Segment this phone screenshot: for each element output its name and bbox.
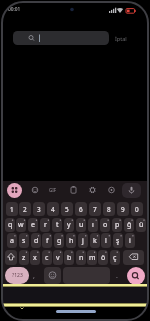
staticText: s xyxy=(22,236,26,246)
staticText: g xyxy=(57,236,62,246)
staticText: e xyxy=(31,220,35,230)
button[interactable]: İptal xyxy=(115,35,127,42)
staticText: ğ xyxy=(127,220,132,230)
button[interactable]: ç xyxy=(110,250,120,265)
button[interactable]: u xyxy=(76,218,86,232)
button[interactable]: ?123 xyxy=(5,267,29,284)
button[interactable]: 2 xyxy=(19,202,31,216)
button[interactable] xyxy=(122,183,141,198)
staticText: 9 xyxy=(121,205,125,214)
staticText: q xyxy=(8,220,13,230)
button[interactable]: j xyxy=(78,233,88,248)
button[interactable]: w xyxy=(16,218,26,232)
staticText: f xyxy=(46,236,49,246)
staticText: y xyxy=(67,220,71,230)
button[interactable]: v xyxy=(53,250,63,265)
staticText: i xyxy=(129,236,131,246)
staticText: k xyxy=(93,236,97,246)
button[interactable]: d xyxy=(31,233,41,248)
staticText: p xyxy=(115,220,120,230)
button[interactable]: y xyxy=(64,218,74,232)
staticText: r xyxy=(44,220,47,230)
button[interactable]: 7 xyxy=(89,202,101,216)
button[interactable]: 0 xyxy=(131,202,143,216)
staticText: l xyxy=(105,236,107,246)
button[interactable]: , xyxy=(33,271,35,281)
button[interactable]: 6 xyxy=(75,202,87,216)
staticText: ı xyxy=(92,220,94,230)
staticText: ç xyxy=(113,253,117,263)
staticText: u xyxy=(79,220,84,230)
button[interactable]: c xyxy=(42,250,52,265)
staticText: z xyxy=(22,253,26,263)
staticText: b xyxy=(67,253,72,263)
staticText: 8 xyxy=(107,205,111,214)
button[interactable]: i xyxy=(125,233,135,248)
button[interactable]: ü xyxy=(136,218,146,232)
staticText: 4 xyxy=(51,205,55,214)
button[interactable] xyxy=(13,31,109,45)
staticText: c xyxy=(45,253,49,263)
button[interactable]: ş xyxy=(113,233,123,248)
button[interactable]: 1 xyxy=(6,202,18,216)
button[interactable]: k xyxy=(90,233,100,248)
staticText: h xyxy=(69,236,74,246)
button[interactable]: 8 xyxy=(103,202,115,216)
button[interactable]: 5 xyxy=(61,202,73,216)
button[interactable]: GIF xyxy=(49,187,57,193)
staticText: d xyxy=(34,236,39,246)
staticText: o xyxy=(103,220,108,230)
button[interactable]: s xyxy=(19,233,29,248)
staticText: n xyxy=(79,253,84,263)
staticText: 0 xyxy=(135,205,139,214)
button[interactable]: 4 xyxy=(47,202,59,216)
button[interactable]: a xyxy=(7,233,17,248)
staticText: v xyxy=(56,253,60,263)
staticText: 2 xyxy=(23,205,27,214)
button[interactable]: q xyxy=(5,218,15,232)
staticText: ö xyxy=(101,253,106,263)
staticText: ?123 xyxy=(12,272,23,279)
button[interactable]: 9 xyxy=(117,202,129,216)
button[interactable] xyxy=(5,250,17,265)
button[interactable]: x xyxy=(30,250,40,265)
button[interactable]: ı xyxy=(88,218,98,232)
button[interactable]: ğ xyxy=(124,218,134,232)
staticText: 1 xyxy=(10,205,14,214)
button[interactable]: r xyxy=(40,218,50,232)
button[interactable]: e xyxy=(28,218,38,232)
button[interactable]: t xyxy=(52,218,62,232)
staticText: 5 xyxy=(65,205,69,214)
staticText: 6 xyxy=(79,205,83,214)
button[interactable] xyxy=(127,267,145,285)
button[interactable]: f xyxy=(42,233,52,248)
button[interactable]: ö xyxy=(98,250,108,265)
staticText: x xyxy=(33,253,37,263)
button[interactable]: o xyxy=(100,218,110,232)
button[interactable]: 3 xyxy=(33,202,45,216)
staticText: j xyxy=(82,236,84,246)
button[interactable] xyxy=(123,250,144,265)
staticText: w xyxy=(18,220,24,230)
staticText: t xyxy=(56,220,59,230)
button[interactable]: h xyxy=(66,233,76,248)
staticText: 3 xyxy=(37,205,41,214)
button[interactable] xyxy=(44,267,61,284)
staticText: a xyxy=(10,236,14,246)
button[interactable]: z xyxy=(19,250,29,265)
staticText: ş xyxy=(116,236,120,246)
staticText: m xyxy=(89,253,96,263)
button[interactable]: l xyxy=(101,233,111,248)
button[interactable]: p xyxy=(112,218,122,232)
button[interactable]: g xyxy=(54,233,64,248)
staticText: 7 xyxy=(93,205,97,214)
button[interactable]: m xyxy=(87,250,97,265)
staticText: ü xyxy=(139,220,144,230)
button[interactable]: . xyxy=(116,271,118,281)
button[interactable]: b xyxy=(64,250,74,265)
staticText: 00:01 xyxy=(8,6,21,13)
button[interactable]: n xyxy=(76,250,86,265)
button[interactable] xyxy=(7,183,22,198)
